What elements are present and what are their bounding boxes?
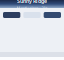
staticText: Sunny Ridge	[17, 0, 47, 4]
staticText: Mostly clear · 21°	[16, 5, 47, 11]
